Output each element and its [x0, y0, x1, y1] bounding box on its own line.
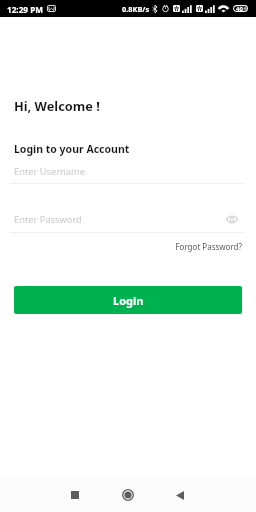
staticText: Forgot Password?	[175, 241, 242, 252]
button[interactable]: Back	[164, 479, 196, 511]
button[interactable]: Recent apps	[59, 479, 91, 511]
button[interactable]: Enter Username	[10, 161, 245, 184]
button[interactable]: Home	[112, 479, 144, 511]
staticText: Login to your Account	[14, 142, 130, 156]
staticText: Login	[113, 293, 144, 308]
button[interactable]: Login	[14, 286, 242, 314]
staticText: 40	[236, 5, 243, 12]
staticText: Enter Username	[14, 165, 86, 178]
button[interactable]: Show password	[222, 210, 241, 229]
staticText: Hi, Welcome !	[14, 97, 100, 114]
button[interactable]: Forgot Password?	[160, 240, 242, 253]
staticText: Enter Password	[14, 213, 82, 226]
staticText: 12:29 PM	[7, 4, 43, 15]
button[interactable]: Enter Password	[10, 210, 245, 233]
staticText: 0.8KB/s	[122, 4, 150, 14]
